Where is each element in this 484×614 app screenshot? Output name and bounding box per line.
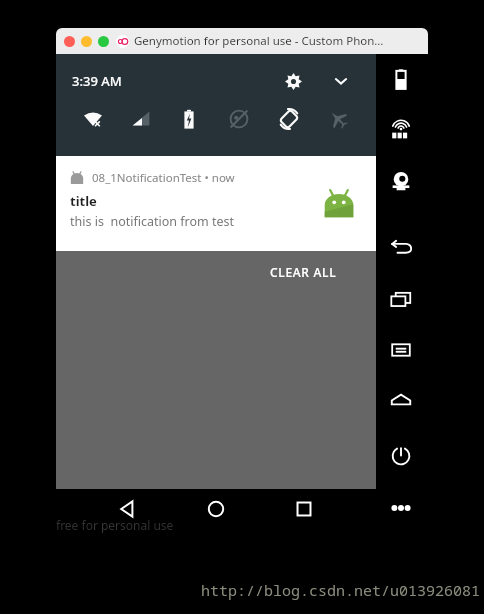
button[interactable]: [98, 36, 109, 47]
button[interactable]: Recent apps: [382, 280, 420, 318]
button[interactable]: [81, 36, 92, 47]
button[interactable]: Back: [109, 491, 145, 527]
staticText: 08_1NotificationTest • now: [92, 170, 235, 186]
button[interactable]: More options: [382, 489, 420, 527]
button[interactable]: Do not disturb: [222, 102, 256, 136]
button[interactable]: Recents: [286, 491, 322, 527]
button[interactable]: Back: [382, 228, 420, 266]
button[interactable]: Menu: [382, 331, 420, 369]
button[interactable]: [64, 36, 75, 47]
button[interactable]: Auto rotate: [272, 102, 306, 136]
button[interactable]: Camera: [382, 162, 420, 200]
staticText: title: [70, 192, 97, 210]
staticText: CLEAR ALL: [270, 264, 337, 280]
button[interactable]: Home: [198, 491, 234, 527]
button[interactable]: Airplane mode: [321, 102, 355, 136]
button[interactable]: 08_1NotificationTest • now: [56, 156, 376, 251]
button[interactable]: Mobile signal: [124, 102, 158, 136]
staticText: free for personal use: [56, 517, 174, 533]
button[interactable]: Battery: [382, 60, 420, 98]
button[interactable]: More: [383, 491, 419, 527]
staticText: 3:39 AM: [72, 72, 122, 90]
button[interactable]: Power: [382, 437, 420, 475]
button[interactable]: Settings: [280, 68, 306, 94]
button[interactable]: Wi-Fi off: [76, 102, 110, 136]
button[interactable]: Expand: [328, 68, 354, 94]
staticText: this is notification from test: [70, 213, 235, 230]
staticText: Genymotion for personal use - Custom Pho…: [134, 33, 384, 49]
button[interactable]: GPS: [382, 111, 420, 149]
button[interactable]: Battery charging: [172, 102, 206, 136]
button[interactable]: Home: [382, 381, 420, 419]
button[interactable]: CLEAR ALL: [270, 258, 337, 286]
staticText: http://blog.csdn.net/u013926081: [0, 580, 480, 600]
